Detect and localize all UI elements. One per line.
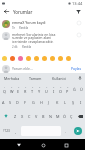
button[interactable]: Shift [0, 109, 11, 123]
staticText: M [56, 114, 60, 119]
button[interactable]: Voice input [77, 75, 83, 81]
staticText: J [48, 100, 50, 105]
staticText: A [2, 100, 5, 105]
button[interactable]: mehmet Sorulariniz en kisa surede ve pay… [0, 30, 85, 49]
button[interactable]: 9 [57, 83, 64, 96]
button[interactable]: S [7, 96, 14, 109]
button[interactable]: Paylas [71, 66, 82, 71]
staticText: 9 [60, 86, 62, 89]
button[interactable]: Reaction [50, 56, 55, 61]
button[interactable]: K [53, 96, 61, 109]
staticText: 0 [67, 86, 69, 89]
button[interactable]: Ş [69, 96, 77, 109]
staticText: I [80, 100, 82, 105]
button[interactable]: 0 [64, 83, 71, 96]
staticText: E [17, 89, 20, 94]
staticText: mehmet Sorulariniz en kisa surede ve pay… [12, 32, 56, 44]
button[interactable]: Reaction [66, 56, 71, 61]
staticText: Z [14, 114, 17, 119]
button[interactable]: Yanitla [19, 26, 29, 30]
button[interactable]: Ü [78, 83, 85, 96]
staticText: I [53, 89, 55, 94]
button[interactable]: Like [76, 32, 82, 38]
button[interactable]: Filter [74, 7, 83, 16]
button[interactable]: V [33, 109, 40, 123]
button[interactable]: Ö [61, 109, 68, 123]
button[interactable]: 3 [15, 83, 22, 96]
staticText: Ç [70, 114, 73, 119]
button[interactable]: Back [14, 140, 24, 150]
button[interactable]: I [77, 96, 85, 109]
button[interactable]: Send [74, 127, 82, 135]
staticText: Q [3, 89, 6, 94]
button[interactable]: Home [38, 140, 48, 150]
staticText: G [32, 100, 35, 105]
staticText: C [28, 114, 31, 119]
button[interactable]: 6 [36, 83, 43, 96]
staticText: V [35, 114, 38, 119]
staticText: K [56, 100, 59, 105]
button[interactable]: 5 [29, 83, 36, 96]
button[interactable]: A [0, 96, 7, 109]
staticText: Ö [63, 114, 66, 119]
button[interactable]: Backspace [75, 109, 85, 123]
button[interactable]: 4 [22, 83, 29, 96]
button[interactable]: Kullanici [52, 76, 67, 81]
button[interactable]: 8 [50, 83, 57, 96]
button[interactable]: 1 [0, 83, 8, 96]
button[interactable]: 7 [43, 83, 50, 96]
button[interactable]: Recents [61, 140, 71, 150]
button[interactable]: ?123 [0, 123, 12, 139]
staticText: W [10, 89, 14, 94]
button[interactable]: Z [11, 109, 19, 123]
staticText: S [9, 100, 12, 105]
button[interactable]: Back [2, 7, 11, 16]
staticText: 2 [11, 86, 13, 89]
staticText: 5 [32, 86, 34, 89]
button[interactable]: Reaction [42, 56, 47, 61]
staticText: , [15, 129, 17, 134]
staticText: Y [38, 89, 41, 94]
staticText: 2 dk [12, 45, 18, 49]
button[interactable]: X [19, 109, 26, 123]
button[interactable]: N [47, 109, 54, 123]
button[interactable]: Merhaba [4, 76, 20, 81]
staticText: D [16, 100, 19, 105]
button[interactable]: Ğ [71, 83, 78, 96]
staticText: 1h [12, 26, 16, 30]
staticText: R [24, 89, 27, 94]
staticText: O [59, 89, 62, 94]
button[interactable]: Reaction [34, 56, 39, 61]
staticText: Yorumlar [13, 9, 33, 15]
button[interactable]: Reaction [2, 56, 7, 61]
button[interactable]: F [21, 96, 29, 109]
button[interactable]: 2 [8, 83, 15, 96]
button[interactable]: H [37, 96, 45, 109]
staticText: Ş [72, 100, 75, 105]
button[interactable]: Yorum ekle... [12, 66, 71, 71]
button[interactable]: D [14, 96, 21, 109]
button[interactable]: Reaction [10, 56, 15, 61]
button[interactable]: Comma [12, 123, 20, 139]
button[interactable]: G [29, 96, 37, 109]
button[interactable]: Ç [68, 109, 75, 123]
button[interactable]: L [61, 96, 69, 109]
staticText: U [45, 89, 48, 94]
button[interactable]: Tamam [29, 76, 42, 81]
staticText: T [31, 89, 34, 94]
staticText: Ü [80, 87, 83, 92]
button[interactable]: C [26, 109, 33, 123]
button[interactable]: Yanitla [22, 45, 32, 49]
button[interactable]: Reaction [18, 56, 23, 61]
staticText: Ğ [73, 87, 76, 92]
button[interactable]: emmaX Yorum kaydi [0, 17, 85, 30]
staticText: N [49, 114, 52, 119]
button[interactable]: Reaction [26, 56, 31, 61]
button[interactable]: Reaction [58, 56, 63, 61]
button[interactable]: J [45, 96, 53, 109]
button[interactable]: Like [76, 20, 82, 26]
button[interactable]: B [40, 109, 47, 123]
button[interactable]: M [54, 109, 61, 123]
